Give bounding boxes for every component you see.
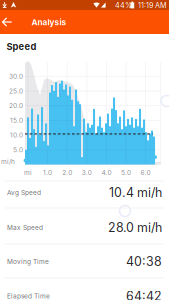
staticText: 25.0 — [9, 87, 23, 95]
staticText: 44% — [115, 1, 132, 10]
staticText: Avg Speed — [7, 188, 41, 196]
staticText: mi/h — [1, 157, 15, 165]
staticText: Moving Time — [7, 257, 49, 265]
staticText: 5.0 — [121, 168, 131, 176]
button[interactable]: Back — [0, 10, 24, 34]
staticText: 10.0 — [10, 131, 23, 139]
staticText: 15.0 — [10, 116, 23, 124]
staticText: 40:38 — [126, 254, 162, 269]
staticText: Elapsed Time — [7, 292, 50, 300]
staticText: 64:42 — [126, 288, 162, 300]
staticText: 3.0 — [82, 168, 92, 176]
staticText: Max Speed — [7, 223, 43, 231]
staticText: Analysis — [31, 17, 66, 27]
staticText: mi — [24, 168, 32, 176]
staticText: 2.0 — [62, 168, 72, 176]
staticText: 4.0 — [101, 168, 111, 176]
staticText: 28.0 mi/h — [108, 220, 162, 235]
staticText: 10.4 mi/h — [109, 185, 162, 200]
staticText: 1.0 — [43, 168, 52, 176]
staticText: 6.0 — [141, 168, 151, 176]
staticText: Speed — [6, 41, 36, 52]
staticText: 30.0 — [9, 72, 23, 80]
staticText: 11:19 AM — [138, 1, 167, 10]
staticText: 20.0 — [9, 102, 23, 110]
staticText: 5.0 — [13, 146, 23, 154]
